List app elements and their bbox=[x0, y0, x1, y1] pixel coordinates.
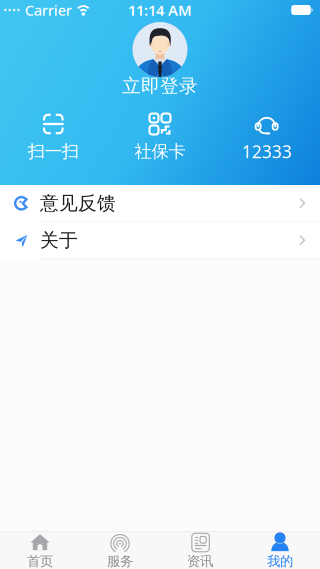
button[interactable]: 12333 bbox=[213, 112, 320, 159]
button[interactable]: 社保卡 bbox=[107, 112, 213, 159]
button[interactable]: 意见反馈 bbox=[0, 185, 320, 222]
staticText: Carrier bbox=[25, 0, 72, 20]
staticText: 我的 bbox=[267, 553, 293, 569]
staticText: 社保卡 bbox=[134, 141, 185, 162]
button[interactable]: 资讯 bbox=[160, 528, 240, 569]
staticText: 12333 bbox=[242, 140, 292, 163]
staticText: 关于 bbox=[40, 229, 78, 252]
staticText: 11:14 AM bbox=[128, 0, 192, 20]
button[interactable]: 服务 bbox=[80, 528, 160, 569]
staticText: 服务 bbox=[107, 553, 133, 569]
staticText: 资讯 bbox=[187, 553, 213, 569]
staticText: 立即登录 bbox=[122, 74, 198, 97]
button[interactable]: 我的 bbox=[240, 528, 320, 569]
button[interactable]: 关于 bbox=[0, 222, 320, 259]
button[interactable]: 扫一扫 bbox=[0, 112, 107, 159]
staticText: 意见反馈 bbox=[40, 192, 116, 215]
staticText: 首页 bbox=[27, 553, 53, 569]
button[interactable]: 首页 bbox=[0, 528, 80, 569]
staticText: 扫一扫 bbox=[28, 141, 79, 162]
